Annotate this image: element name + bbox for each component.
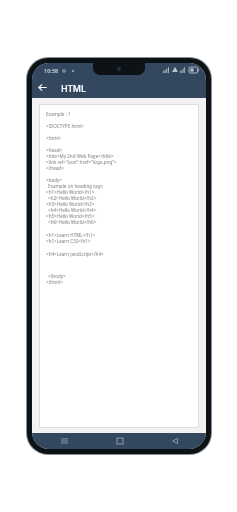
button[interactable]: Home	[92, 433, 147, 449]
staticText: <h1>Hello World</h1>	[46, 189, 95, 195]
staticText: <html>	[46, 135, 62, 141]
staticText: <h1>Learn CSS</h1>	[46, 238, 91, 244]
staticText: <h4>Learn JavaScript</h4>	[46, 251, 104, 257]
button[interactable]: Back	[32, 77, 53, 98]
staticText: <title>My 2nd Web Page</title>	[46, 153, 114, 159]
button[interactable]: Back	[147, 433, 202, 449]
staticText: Example on heading tags	[48, 183, 103, 189]
staticText: <!DOCTYPE html>	[46, 123, 84, 129]
staticText: Example : 1	[46, 111, 71, 117]
staticText: <h3>Hello World</h3>	[46, 201, 95, 207]
staticText: <h6>Hello World</h6>	[48, 219, 97, 225]
staticText: <body>	[46, 177, 63, 183]
staticText: </html>	[46, 279, 63, 285]
staticText: <h4>Hello World</h4>	[48, 207, 97, 213]
staticText: <h2>Hello World</h2>	[48, 195, 97, 201]
staticText: </body>	[48, 273, 66, 279]
staticText: 10:38	[44, 67, 59, 74]
staticText: HTML	[61, 82, 86, 94]
staticText: <h5>Hello World</h5>	[46, 213, 95, 219]
button[interactable]: Recent apps	[36, 433, 92, 449]
staticText: <link rel="icon" href="logo.png">	[46, 159, 117, 165]
staticText: <head>	[46, 147, 63, 153]
staticText: <h1>Learn HTML</h1>	[46, 232, 96, 238]
staticText: </head>	[46, 165, 64, 171]
